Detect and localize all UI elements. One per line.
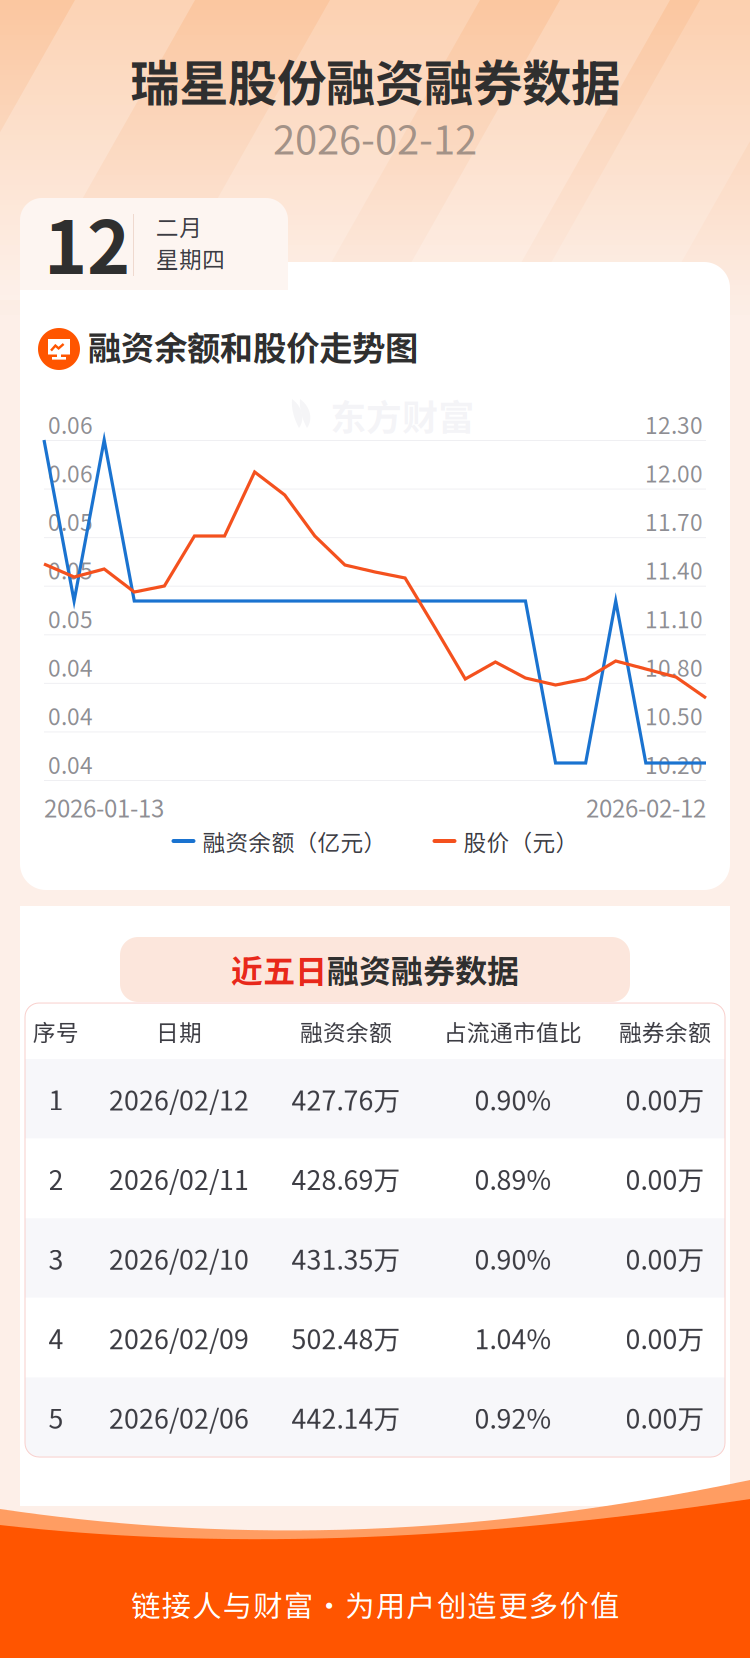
staticText: 星期四 [156,242,225,274]
staticText: 11.40 [645,553,703,586]
staticText: 0.90% [474,1239,551,1277]
staticText: 占流通市值比 [444,1015,582,1047]
staticText: 2026-02-12 [273,108,477,166]
staticText: 0.06 [48,456,93,489]
staticText: 链接人与财富·为用户创造更多价值 [131,1583,619,1625]
staticText: 0.05 [48,602,93,635]
staticText: 0.00万 [625,1398,704,1436]
staticText: 2026/02/10 [109,1239,249,1277]
staticText: 2026/02/06 [109,1398,249,1436]
staticText: 1 [48,1079,63,1118]
staticText: 股价（元） [463,825,578,857]
staticText: 瑞星股份融资融券数据 [130,44,620,116]
staticText: 0.00万 [625,1159,704,1198]
staticText: 2026/02/11 [109,1159,249,1198]
staticText: 0.05 [48,553,93,586]
staticText: 0.05 [48,505,93,537]
staticText: 2026/02/12 [109,1079,249,1118]
staticText: 融券余额 [619,1015,711,1047]
staticText: 融资余额（亿元） [202,825,386,857]
staticText: 2026-02-12 [586,790,706,824]
staticText: 442.14万 [291,1398,400,1436]
staticText: 4 [48,1318,63,1357]
staticText: 11.70 [645,505,703,537]
staticText: 0.06 [48,408,93,440]
staticText: 2 [48,1159,63,1198]
staticText: 融资余额 [300,1015,392,1047]
staticText: 0.92% [474,1398,551,1436]
staticText: 0.04 [48,650,93,683]
staticText: 2026-01-13 [44,790,164,824]
staticText: 10.80 [645,650,703,683]
staticText: 融资融券数据 [327,946,519,992]
staticText: 0.04 [48,699,93,732]
staticText: 0.00万 [625,1079,704,1118]
staticText: 12 [44,189,130,295]
staticText: 1.04% [474,1318,551,1357]
staticText: 502.48万 [291,1318,400,1357]
staticText: 0.00万 [625,1318,704,1357]
staticText: 2026/02/09 [109,1318,249,1357]
staticText: 5 [48,1398,63,1436]
staticText: 序号 [33,1015,79,1047]
staticText: 0.00万 [625,1239,704,1277]
staticText: 11.10 [645,602,703,635]
staticText: 10.20 [645,748,703,780]
staticText: 近五日 [231,946,327,992]
staticText: 二月 [156,210,202,242]
staticText: 东方财富 [330,389,474,441]
staticText: 日期 [156,1015,202,1047]
staticText: 431.35万 [291,1239,400,1277]
staticText: 0.04 [48,748,93,780]
staticText: 12.00 [645,456,703,489]
staticText: 10.50 [645,699,703,732]
staticText: 12.30 [645,408,703,440]
staticText: 3 [48,1239,63,1277]
staticText: 0.89% [474,1159,551,1198]
staticText: 融资余额和股价走势图 [88,322,418,370]
staticText: 0.90% [474,1079,551,1118]
staticText: 427.76万 [291,1079,400,1118]
staticText: 428.69万 [291,1159,400,1198]
